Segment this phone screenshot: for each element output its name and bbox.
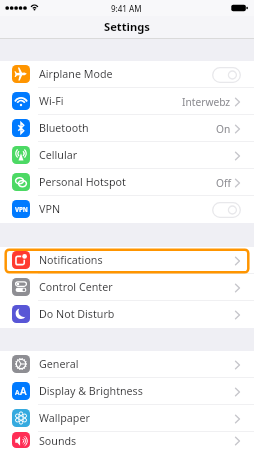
button[interactable]: Control Center [0, 274, 254, 301]
button[interactable]: Sounds [0, 432, 254, 450]
button[interactable]: Cellular [0, 142, 254, 169]
staticText: On [216, 122, 231, 136]
staticText: Airplane Mode [39, 67, 113, 82]
button[interactable]: Do Not Disturb [0, 301, 254, 328]
staticText: A [15, 388, 20, 398]
staticText: Wallpaper [39, 411, 90, 426]
staticText: VPN [39, 202, 61, 217]
staticText: 9:41 AM [111, 3, 142, 14]
button[interactable]: Bluetooth [0, 115, 254, 142]
button[interactable]: Wi-Fi [0, 88, 254, 115]
button[interactable]: Wallpaper [0, 405, 254, 432]
staticText: A [20, 384, 27, 398]
staticText: Interwebz [182, 95, 231, 109]
button[interactable]: Toggle Airplane Mode [212, 67, 241, 83]
staticText: Do Not Disturb [39, 307, 115, 322]
staticText: Off [216, 176, 231, 190]
staticText: Personal Hotspot [39, 175, 126, 190]
staticText: Control Center [39, 280, 113, 295]
staticText: General [39, 357, 79, 372]
button[interactable]: Notifications [0, 247, 254, 274]
button[interactable]: General [0, 351, 254, 378]
button[interactable]: VPN [0, 196, 254, 223]
staticText: Notifications [39, 253, 103, 268]
staticText: Wi-Fi [39, 94, 64, 109]
staticText: Settings [104, 19, 150, 34]
staticText: Cellular [39, 148, 78, 163]
staticText: Display & Brightness [39, 384, 143, 399]
button[interactable]: A [0, 378, 254, 405]
button[interactable]: Personal Hotspot [0, 169, 254, 196]
staticText: VPN [15, 205, 28, 213]
button[interactable]: Airplane Mode [0, 61, 254, 88]
staticText: Sounds [39, 434, 77, 449]
staticText: Bluetooth [39, 121, 89, 136]
button[interactable]: Toggle VPN [212, 202, 241, 218]
